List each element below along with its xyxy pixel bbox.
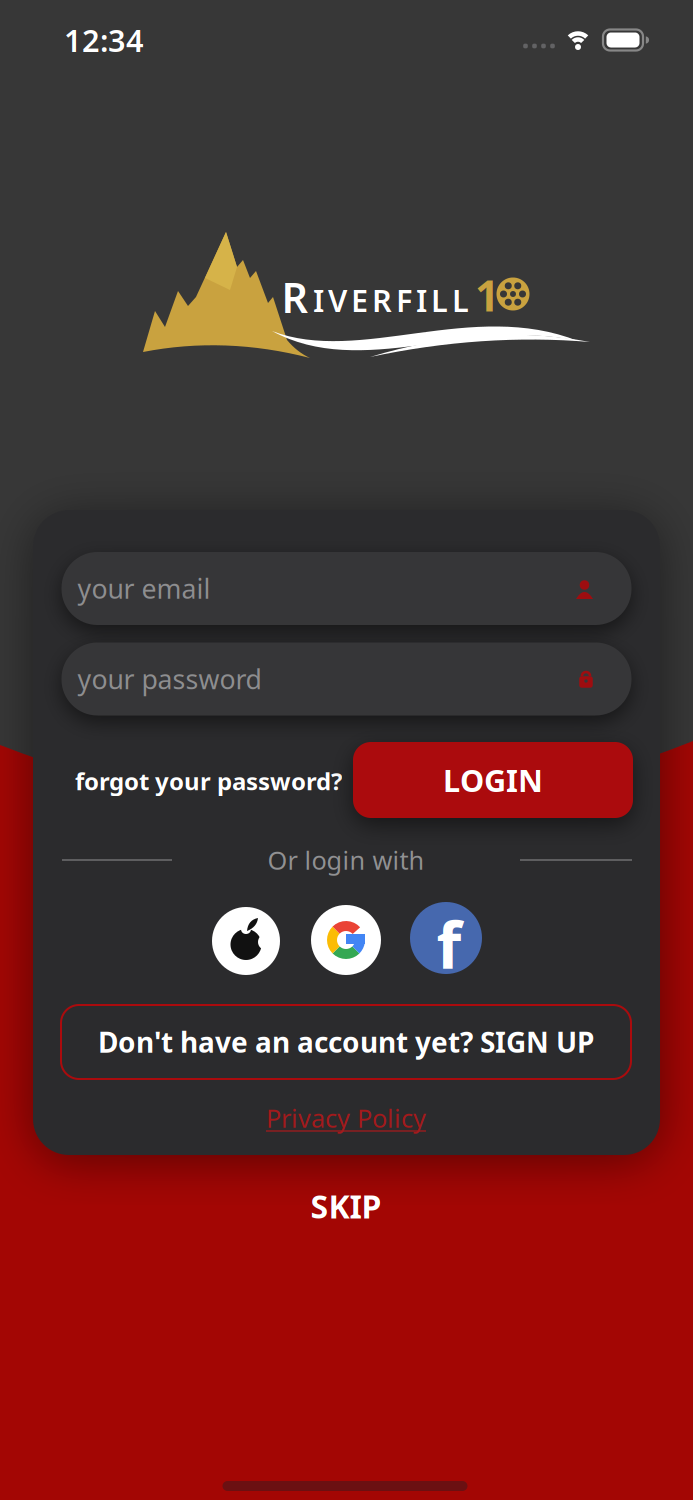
button[interactable]: forgot your password? bbox=[75, 765, 405, 797]
button[interactable]: Privacy Policy bbox=[266, 1101, 426, 1135]
staticText: LOGIN bbox=[443, 760, 543, 800]
staticText: 1 bbox=[475, 267, 499, 323]
button[interactable]: your password bbox=[61, 642, 631, 715]
button[interactable]: f bbox=[410, 902, 482, 974]
staticText: your password bbox=[77, 661, 261, 697]
staticText: f bbox=[436, 901, 461, 986]
button[interactable]: your email bbox=[61, 552, 631, 625]
button[interactable]: Don't have an account yet? SIGN UP bbox=[61, 1005, 631, 1079]
staticText: Privacy Policy bbox=[266, 1101, 426, 1135]
staticText: forgot your password? bbox=[75, 765, 342, 797]
staticText: R bbox=[281, 270, 308, 324]
button[interactable]: SKIP bbox=[310, 1185, 381, 1227]
staticText: Or login with bbox=[267, 843, 424, 877]
button[interactable]: LOGIN bbox=[353, 742, 633, 818]
button[interactable] bbox=[311, 905, 381, 975]
staticText: 12:34 bbox=[64, 20, 144, 60]
staticText: your email bbox=[77, 571, 210, 606]
staticText: Don't have an account yet? SIGN UP bbox=[98, 1023, 594, 1061]
button[interactable] bbox=[212, 907, 280, 975]
staticText: IVERFILL bbox=[313, 280, 469, 320]
staticText: SKIP bbox=[310, 1185, 381, 1227]
